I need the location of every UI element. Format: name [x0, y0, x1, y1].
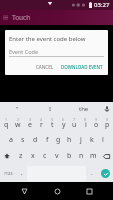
button[interactable]: I — [34, 102, 67, 116]
staticText: g — [56, 135, 61, 145]
button[interactable]: 1 — [0, 116, 12, 132]
staticText: , — [21, 169, 23, 177]
button[interactable]: c — [39, 148, 51, 164]
staticText: 4 — [40, 117, 43, 122]
staticText: t — [51, 120, 54, 130]
staticText: 6 — [62, 117, 65, 122]
button[interactable]: 2 — [12, 116, 24, 132]
staticText: the — [79, 105, 89, 113]
staticText: c — [43, 151, 47, 161]
staticText: 8 — [84, 117, 87, 122]
staticText: " — [16, 105, 19, 113]
staticText: u — [72, 120, 77, 130]
staticText: Touch — [12, 13, 31, 22]
staticText: v — [55, 151, 59, 161]
button[interactable]: CANCEL — [34, 63, 56, 71]
staticText: ?123 — [4, 171, 13, 176]
button[interactable]: x — [27, 148, 39, 164]
staticText: h — [67, 135, 72, 145]
button[interactable]: 9 — [91, 116, 102, 132]
button[interactable]: Enter — [97, 164, 113, 182]
staticText: CANCEL — [36, 64, 54, 70]
button[interactable]: Period — [86, 164, 97, 182]
button[interactable]: 8 — [80, 116, 91, 132]
staticText: x — [31, 151, 35, 161]
staticText: s — [21, 135, 25, 145]
staticText: 3 — [29, 117, 32, 122]
staticText: o — [94, 120, 99, 130]
button[interactable]: b — [63, 148, 75, 164]
button[interactable]: Backspace — [99, 148, 113, 164]
button[interactable]: DOWNLOAD EVENT — [59, 63, 105, 71]
staticText: i — [85, 120, 87, 130]
button[interactable]: j — [75, 132, 86, 148]
button[interactable]: v — [51, 148, 63, 164]
staticText: y — [62, 120, 66, 130]
staticText: w — [15, 120, 21, 130]
button[interactable]: 5 — [47, 116, 58, 132]
button[interactable]: h — [64, 132, 75, 148]
staticText: q — [4, 120, 9, 130]
button[interactable]: Menu — [0, 12, 11, 23]
staticText: n — [79, 151, 84, 161]
button[interactable]: 4 — [36, 116, 47, 132]
button[interactable]: 6 — [58, 116, 69, 132]
button[interactable]: Home — [48, 182, 66, 200]
button[interactable]: Recents — [80, 182, 98, 200]
staticText: l — [102, 135, 104, 145]
button[interactable]: l — [97, 132, 108, 148]
button[interactable]: n — [75, 148, 87, 164]
button[interactable]: Shift — [0, 148, 14, 164]
button[interactable]: 3 — [24, 116, 36, 132]
staticText: m — [90, 151, 97, 161]
staticText: . — [91, 169, 93, 177]
button[interactable]: ?123 — [0, 164, 16, 182]
staticText: z — [19, 151, 23, 161]
button[interactable]: f — [41, 132, 53, 148]
staticText: k — [90, 135, 94, 145]
staticText: Enter the event code below — [9, 35, 86, 43]
button[interactable]: the — [67, 102, 100, 116]
staticText: r — [40, 120, 43, 130]
staticText: I — [49, 105, 52, 113]
button[interactable]: d — [29, 132, 41, 148]
button[interactable]: Back — [15, 182, 33, 200]
button[interactable]: 7 — [69, 116, 80, 132]
staticText: 2 — [17, 117, 20, 122]
button[interactable]: Comma — [16, 164, 27, 182]
staticText: Event Code — [9, 48, 39, 55]
staticText: p — [105, 120, 110, 130]
staticText: j — [80, 135, 82, 145]
button[interactable]: m — [87, 148, 99, 164]
button[interactable]: g — [53, 132, 64, 148]
button[interactable]: " — [0, 102, 34, 116]
staticText: a — [9, 135, 13, 145]
staticText: d — [33, 135, 38, 145]
staticText: 03:27 — [94, 1, 110, 9]
button[interactable]: z — [14, 148, 27, 164]
button[interactable]: k — [86, 132, 97, 148]
button[interactable]: Voice input — [100, 102, 113, 116]
staticText: f — [46, 135, 49, 145]
staticText: DOWNLOAD EVENT — [61, 64, 103, 70]
staticText: 9 — [95, 117, 98, 122]
button[interactable]: a — [5, 132, 17, 148]
staticText: 7 — [73, 117, 76, 122]
button[interactable]: 0 — [102, 116, 113, 132]
staticText: 1 — [5, 117, 8, 122]
staticText: e — [28, 120, 32, 130]
staticText: b — [67, 151, 72, 161]
staticText: 0 — [106, 117, 109, 122]
button[interactable]: s — [17, 132, 29, 148]
staticText: 5 — [51, 117, 54, 122]
